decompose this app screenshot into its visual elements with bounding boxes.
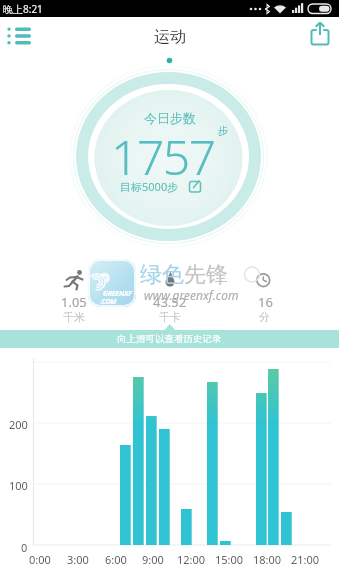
staticText: 15:00 [215, 552, 244, 566]
button[interactable] [3, 22, 37, 50]
staticText: 200 [9, 417, 28, 430]
staticText: 21:00 [291, 552, 320, 566]
button[interactable] [305, 19, 335, 51]
staticText: 6:00 [105, 552, 127, 566]
staticText: GREENXF [103, 289, 132, 299]
staticText: 千卡 [159, 310, 181, 323]
staticText: 步 [218, 124, 228, 137]
staticText: 向上滑可以查看历史记录 [117, 333, 222, 345]
staticText: 3:00 [67, 552, 89, 566]
staticText: 千米 [63, 310, 85, 323]
staticText: www.greenxf.com [144, 287, 239, 303]
staticText: 1.05 [61, 293, 87, 307]
staticText: 0:00 [29, 552, 51, 566]
staticText: 目标5000步 [120, 179, 179, 194]
staticText: 1757 [111, 124, 215, 179]
staticText: 16 [258, 293, 273, 307]
button[interactable]: 目标5000步 [0, 0, 327, 15]
staticText: 分 [259, 310, 270, 323]
staticText: 今日步数 [144, 110, 196, 126]
staticText: 绿色 [140, 261, 184, 289]
staticText: .COM [100, 297, 117, 307]
staticText: 100 [9, 478, 28, 491]
staticText: 18:00 [253, 552, 282, 566]
staticText: 晚上8:21 [3, 2, 43, 16]
staticText: 43.52 [153, 293, 187, 307]
button[interactable]: 向上滑可以查看历史记录 [0, 330, 339, 348]
staticText: 运动 [154, 27, 186, 47]
staticText: 9:00 [142, 552, 164, 566]
staticText: 先锋 [184, 261, 228, 289]
staticText: 0 [21, 540, 28, 553]
staticText: 12:00 [177, 552, 206, 566]
